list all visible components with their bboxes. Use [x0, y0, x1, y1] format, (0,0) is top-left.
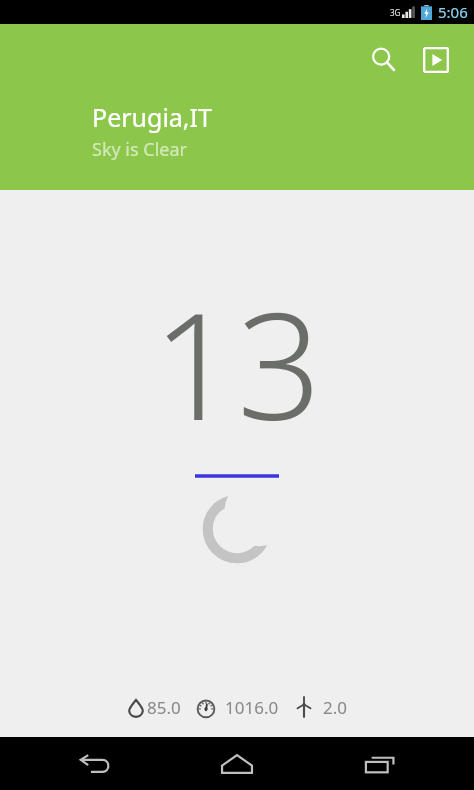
button[interactable]: Play forecast — [412, 36, 460, 84]
staticText: 2.0 — [323, 696, 348, 719]
staticText: Perugia,IT — [92, 100, 212, 134]
staticText: 5:06 — [438, 2, 468, 22]
staticText: 1016.0 — [225, 696, 279, 719]
staticText: 3G — [390, 7, 401, 18]
staticText: 85.0 — [147, 696, 181, 719]
button[interactable]: Search — [360, 36, 408, 84]
staticText: 13 — [152, 262, 322, 464]
button[interactable]: Home — [189, 737, 285, 790]
button[interactable]: Back — [47, 737, 143, 790]
button[interactable]: Recent apps — [332, 737, 428, 790]
staticText: Sky is Clear — [92, 137, 188, 162]
